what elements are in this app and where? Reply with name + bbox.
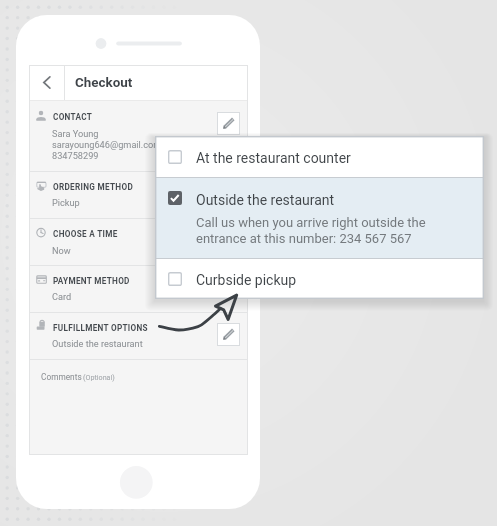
button[interactable]: PAYMENT METHOD — [29, 266, 248, 312]
staticText: 834758299 — [52, 150, 99, 161]
staticText: entrance at this number: 234 567 567 — [196, 231, 412, 246]
button[interactable]: Outside the restaurant — [155, 178, 484, 258]
button[interactable]: FULFILLMENT OPTIONS — [29, 313, 248, 359]
button[interactable]: CHOOSE A TIME — [29, 219, 248, 265]
staticText: FULFILLMENT OPTIONS — [53, 323, 148, 333]
staticText: CHOOSE A TIME — [53, 229, 118, 239]
staticText: sarayoung646@gmail.com — [52, 139, 162, 150]
staticText: ORDERING METHOD — [53, 182, 134, 192]
staticText: Curbside pickup — [196, 272, 297, 288]
staticText: Comments — [41, 372, 82, 382]
staticText: Sara Young — [52, 128, 99, 139]
button[interactable]: At the restaurant counter — [155, 136, 484, 177]
staticText: Checkout — [75, 75, 133, 91]
staticText: Outside the restaurant — [196, 192, 335, 208]
staticText: CONTACT — [53, 112, 93, 122]
button[interactable]: Edit — [217, 323, 240, 346]
button[interactable]: Curbside pickup — [155, 259, 484, 299]
button[interactable]: ORDERING METHOD — [29, 172, 248, 218]
staticText: PAYMENT METHOD — [53, 276, 130, 286]
staticText: (Optional) — [83, 373, 115, 381]
staticText: Now — [52, 245, 71, 256]
staticText: Outside the restaurant — [52, 338, 143, 349]
staticText: Pickup — [52, 197, 80, 208]
button[interactable]: CONTACT — [29, 101, 248, 171]
button[interactable]: Edit — [217, 112, 240, 135]
staticText: At the restaurant counter — [196, 150, 351, 166]
staticText: Call us when you arrive right outside th… — [196, 215, 426, 230]
button[interactable]: Back — [29, 65, 64, 101]
staticText: Card — [52, 291, 72, 302]
